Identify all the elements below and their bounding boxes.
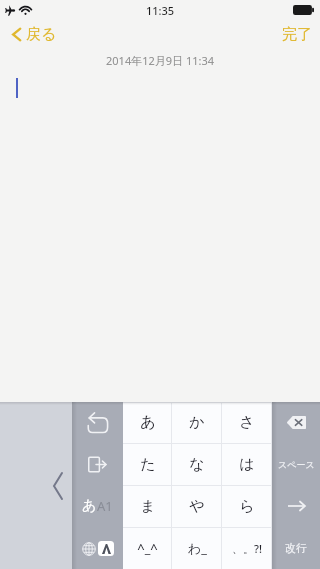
button[interactable]: な <box>172 443 222 485</box>
button[interactable]: exit <box>72 443 123 485</box>
staticText: 、。?! <box>232 541 262 556</box>
button[interactable]: は <box>222 443 272 485</box>
staticText: あ <box>82 497 97 515</box>
button[interactable]: 改行 <box>272 527 320 569</box>
button[interactable]: 戻る <box>0 20 67 49</box>
button[interactable]: 、。?! <box>222 527 272 569</box>
staticText: スペース <box>278 459 315 470</box>
staticText: 戻る <box>26 25 57 44</box>
button[interactable]: か <box>172 402 222 443</box>
staticText: た <box>140 455 156 474</box>
button[interactable]: や <box>172 485 222 527</box>
button[interactable]: ら <box>222 485 272 527</box>
staticText: な <box>189 455 205 474</box>
staticText: A1 <box>97 497 113 515</box>
button[interactable]: aA1 <box>72 485 123 527</box>
button[interactable]: スペース <box>272 443 320 485</box>
button[interactable]: た <box>123 443 172 485</box>
button[interactable]: arrow <box>272 485 320 527</box>
staticText: あ <box>140 413 156 432</box>
staticText: 2014年12月9日 11:34 <box>106 53 215 68</box>
button[interactable]: わ_ <box>172 527 222 569</box>
button[interactable]: Collapse keyboard <box>0 402 72 569</box>
staticText: 完了 <box>282 25 312 44</box>
staticText: ま <box>140 497 156 516</box>
button[interactable]: del <box>272 402 320 443</box>
button[interactable]: あ <box>123 402 172 443</box>
staticText: や <box>189 497 205 516</box>
staticText: 11:35 <box>146 3 175 18</box>
staticText: 改行 <box>285 541 307 555</box>
staticText: さ <box>239 413 255 432</box>
staticText: ら <box>239 497 255 516</box>
button[interactable]: globe <box>72 527 123 569</box>
staticText: ^_^ <box>137 539 158 557</box>
button[interactable]: 完了 <box>270 20 320 49</box>
staticText: わ_ <box>188 539 207 557</box>
button[interactable]: undo <box>72 402 123 443</box>
button[interactable]: さ <box>222 402 272 443</box>
staticText: は <box>239 455 255 474</box>
button[interactable]: ^_^ <box>123 527 172 569</box>
button[interactable]: ま <box>123 485 172 527</box>
staticText: か <box>189 413 205 432</box>
